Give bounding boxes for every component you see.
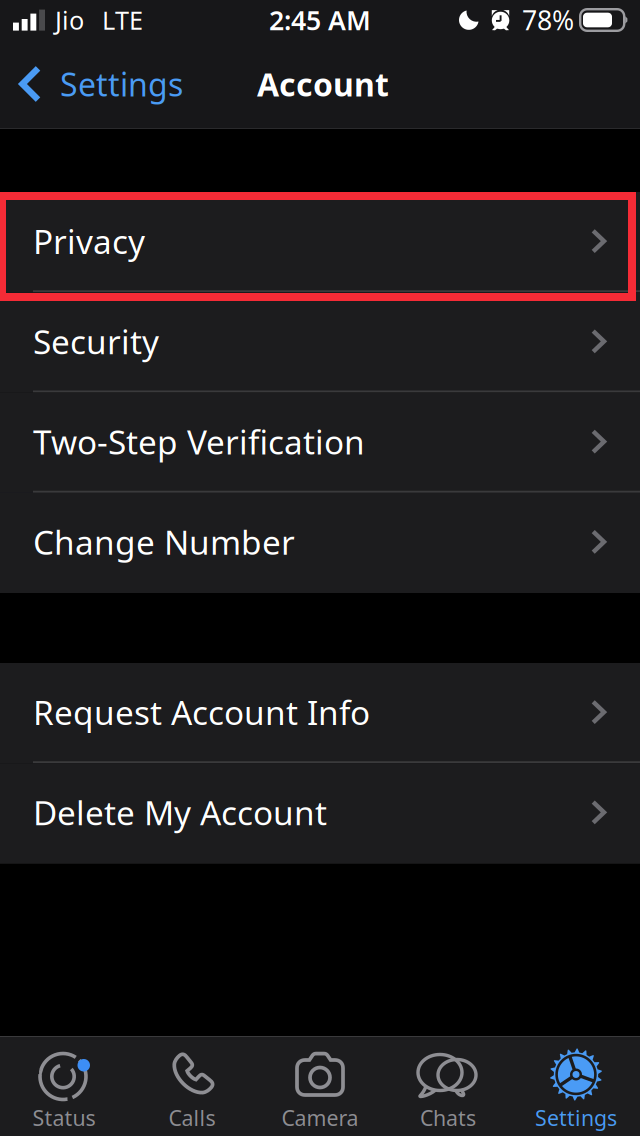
button[interactable]: Status — [0, 1036, 128, 1136]
staticText: Settings — [535, 1103, 617, 1132]
button[interactable]: Settings — [0, 40, 193, 128]
staticText: Jio — [55, 3, 84, 37]
staticText: LTE — [102, 3, 143, 37]
staticText: Calls — [168, 1103, 215, 1132]
staticText: Delete My Account — [33, 790, 327, 834]
staticText: Privacy — [33, 219, 145, 263]
button[interactable]: Change Number — [0, 493, 640, 593]
button[interactable]: Delete My Account — [0, 763, 640, 863]
staticText: Request Account Info — [33, 690, 370, 734]
staticText: 2:45 AM — [269, 2, 371, 38]
staticText: Settings — [60, 63, 183, 105]
staticText: Status — [32, 1103, 95, 1132]
staticText: Change Number — [33, 520, 295, 564]
button[interactable]: Two-Step Verification — [0, 392, 640, 493]
staticText: Camera — [281, 1103, 358, 1132]
button[interactable]: Calls — [128, 1036, 256, 1136]
staticText: Two-Step Verification — [33, 419, 365, 464]
staticText: Chats — [420, 1103, 476, 1132]
staticText: 78% — [522, 2, 574, 38]
button[interactable]: Chats — [384, 1036, 512, 1136]
staticText: Security — [33, 319, 159, 363]
button[interactable]: Privacy — [0, 192, 640, 292]
button[interactable]: Request Account Info — [0, 663, 640, 763]
button[interactable]: Security — [0, 292, 640, 392]
button[interactable]: Settings — [512, 1036, 640, 1136]
staticText: Account — [257, 63, 389, 105]
button[interactable]: Camera — [256, 1036, 384, 1136]
